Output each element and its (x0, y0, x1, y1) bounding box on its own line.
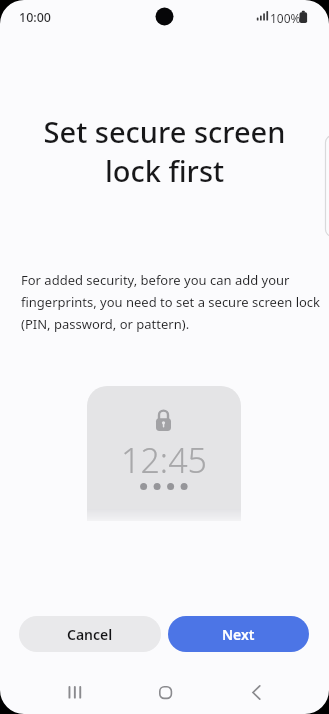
staticText: Next (222, 625, 255, 644)
button[interactable]: Cancel (19, 616, 161, 652)
button[interactable]: Next (168, 616, 309, 652)
staticText: For added security, before you can add y… (21, 271, 321, 333)
staticText: 12:45 (87, 437, 241, 483)
staticText: Set secure screen lock first (0, 112, 329, 190)
button[interactable] (237, 678, 275, 706)
staticText: 10:00 (19, 9, 52, 26)
button[interactable] (146, 678, 184, 706)
button[interactable] (55, 678, 93, 706)
staticText: 100% (270, 10, 301, 26)
staticText: Cancel (67, 625, 113, 644)
